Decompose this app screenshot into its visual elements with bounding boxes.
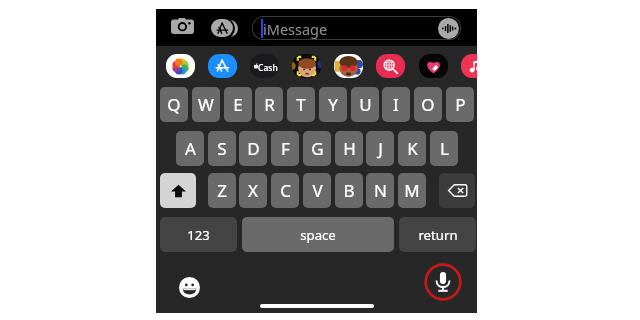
button[interactable]: O bbox=[414, 87, 442, 122]
staticText: S bbox=[217, 137, 227, 160]
staticText: Q bbox=[167, 93, 181, 116]
staticText: 123 bbox=[187, 226, 210, 244]
button[interactable]: H bbox=[335, 131, 363, 166]
button[interactable]: Audio message bbox=[438, 18, 459, 39]
staticText: O bbox=[421, 93, 435, 116]
button[interactable]: X bbox=[239, 173, 267, 208]
staticText: Y bbox=[328, 93, 338, 116]
button[interactable]: B bbox=[335, 173, 363, 208]
button[interactable]: Music bbox=[461, 54, 477, 78]
button[interactable]: iMessage bbox=[252, 16, 461, 40]
staticText: iMessage bbox=[263, 19, 328, 39]
button[interactable]: Apple Cash bbox=[250, 54, 279, 78]
button[interactable]: Memoji bbox=[292, 54, 321, 78]
button[interactable]: G bbox=[303, 131, 331, 166]
button[interactable]: space bbox=[242, 217, 394, 252]
button[interactable]: C bbox=[271, 173, 299, 208]
staticText: B bbox=[343, 179, 355, 202]
button[interactable]: S bbox=[208, 131, 236, 166]
button[interactable]: Shift bbox=[160, 173, 196, 208]
button[interactable]: L bbox=[430, 131, 458, 166]
button[interactable]: U bbox=[351, 87, 379, 122]
button[interactable]: Y bbox=[319, 87, 347, 122]
button[interactable]: E bbox=[224, 87, 252, 122]
button[interactable]: 123 bbox=[160, 217, 237, 252]
staticText: P bbox=[455, 93, 466, 116]
staticText: X bbox=[248, 179, 258, 202]
staticText: U bbox=[359, 93, 372, 116]
staticText: I bbox=[393, 93, 399, 116]
staticText: E bbox=[233, 93, 243, 116]
button[interactable]: Animoji bbox=[334, 54, 363, 78]
button[interactable]: T bbox=[287, 87, 315, 122]
button[interactable]: F bbox=[271, 131, 299, 166]
button[interactable]: Photos bbox=[166, 54, 195, 78]
button[interactable]: Z bbox=[208, 173, 236, 208]
button[interactable]: K bbox=[398, 131, 426, 166]
staticText: D bbox=[247, 137, 260, 160]
button[interactable]: R bbox=[255, 87, 283, 122]
button[interactable]: Camera bbox=[167, 13, 197, 39]
button[interactable]: Dictation bbox=[425, 264, 461, 300]
staticText: C bbox=[280, 179, 291, 202]
button[interactable]: App Store bbox=[208, 54, 237, 78]
staticText: M bbox=[404, 179, 420, 202]
staticText: G bbox=[311, 137, 324, 160]
staticText: N bbox=[374, 179, 387, 202]
button[interactable]: App Store bbox=[211, 19, 233, 37]
staticText: J bbox=[378, 137, 383, 160]
button[interactable]: return bbox=[399, 217, 476, 252]
staticText: return bbox=[418, 226, 458, 244]
staticText: T bbox=[296, 93, 306, 116]
button[interactable]: I bbox=[382, 87, 410, 122]
button[interactable]: J bbox=[366, 131, 394, 166]
button[interactable]: W bbox=[192, 87, 220, 122]
button[interactable]: Emoji bbox=[174, 272, 204, 302]
staticText: W bbox=[198, 93, 214, 116]
button[interactable]: Images bbox=[376, 54, 405, 78]
button[interactable]: Digital Touch bbox=[419, 54, 448, 78]
staticText: L bbox=[440, 137, 449, 160]
staticText: Z bbox=[217, 179, 227, 202]
button[interactable]: Q bbox=[160, 87, 188, 122]
button[interactable]: N bbox=[366, 173, 394, 208]
button[interactable]: P bbox=[446, 87, 474, 122]
staticText: Cash bbox=[258, 62, 278, 74]
staticText: H bbox=[343, 137, 356, 160]
staticText: A bbox=[185, 137, 196, 160]
staticText: F bbox=[281, 137, 290, 160]
staticText: K bbox=[407, 137, 418, 160]
staticText: space bbox=[300, 226, 336, 244]
button[interactable]: Delete bbox=[439, 173, 475, 208]
staticText: V bbox=[312, 179, 323, 202]
button[interactable]: V bbox=[303, 173, 331, 208]
staticText: R bbox=[264, 93, 275, 116]
button[interactable]: M bbox=[398, 173, 426, 208]
button[interactable]: A bbox=[176, 131, 204, 166]
button[interactable]: D bbox=[239, 131, 267, 166]
